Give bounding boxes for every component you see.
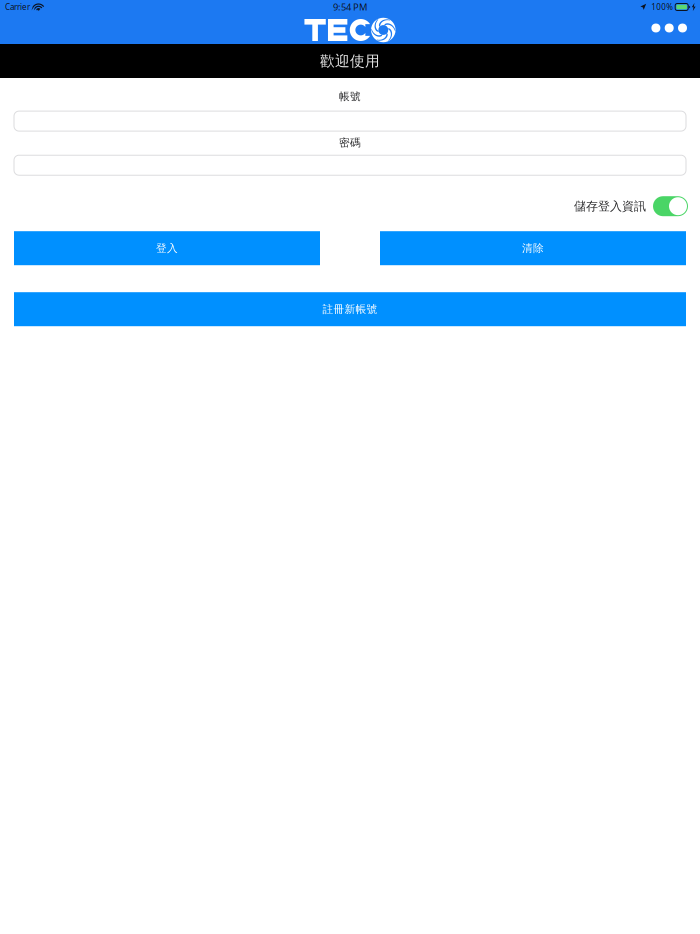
button[interactable]: 註冊新帳號 <box>14 292 686 326</box>
staticText: 帳號 <box>339 90 361 103</box>
staticText: 註冊新帳號 <box>322 303 377 316</box>
staticText: 儲存登入資訊 <box>574 199 646 213</box>
button[interactable]: Save login information <box>653 196 688 216</box>
staticText: 9:54 PM <box>333 1 367 13</box>
staticText: 密碼 <box>339 136 361 149</box>
button[interactable]: More options <box>641 16 700 41</box>
staticText: Carrier <box>5 2 30 12</box>
staticText: 清除 <box>522 242 544 255</box>
button[interactable]: 登入 <box>14 231 320 265</box>
staticText: 100% <box>651 2 673 12</box>
button[interactable]: 清除 <box>380 231 686 265</box>
staticText: 登入 <box>156 242 178 255</box>
staticText: 歡迎使用 <box>320 52 380 70</box>
